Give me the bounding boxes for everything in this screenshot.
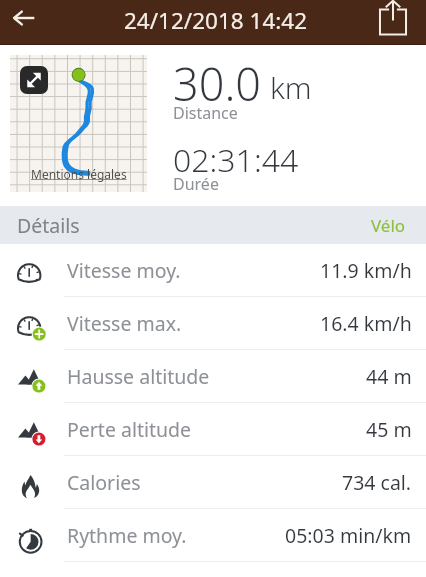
staticText: Rythme moy. — [67, 522, 187, 549]
button[interactable]: Back — [0, 0, 48, 36]
staticText: 30.0 — [173, 53, 262, 114]
button[interactable]: Hausse altitude — [0, 350, 426, 403]
staticText: Perte altitude — [67, 416, 192, 443]
button[interactable]: Rythme moy. — [0, 509, 426, 562]
button[interactable]: Map — [10, 55, 147, 192]
button[interactable]: Expand map — [20, 66, 48, 94]
button[interactable]: Perte altitude — [0, 403, 426, 456]
staticText: Vélo — [371, 214, 406, 237]
staticText: Vitesse max. — [67, 310, 182, 337]
button[interactable]: Share — [371, 0, 415, 40]
staticText: 45 m — [366, 416, 412, 443]
staticText: Mentions légales — [31, 166, 127, 182]
staticText: 16.4 km/h — [320, 310, 412, 337]
staticText: Durée — [173, 173, 219, 195]
staticText: Détails — [17, 212, 80, 239]
staticText: Calories — [67, 469, 141, 496]
staticText: 02:31:44 — [173, 138, 299, 182]
staticText: km — [270, 67, 312, 108]
staticText: 734 cal. — [342, 469, 412, 496]
staticText: 11.9 km/h — [320, 257, 412, 284]
staticText: Hausse altitude — [67, 363, 210, 390]
staticText: 05:03 min/km — [285, 522, 412, 549]
staticText: Vitesse moy. — [67, 257, 181, 284]
button[interactable]: Vitesse moy. — [0, 244, 426, 297]
staticText: Distance — [173, 102, 238, 124]
button[interactable]: Vitesse max. — [0, 297, 426, 350]
staticText: 24/12/2018 14:42 — [124, 5, 308, 36]
staticText: 44 m — [366, 363, 412, 390]
button[interactable]: Calories — [0, 456, 426, 509]
